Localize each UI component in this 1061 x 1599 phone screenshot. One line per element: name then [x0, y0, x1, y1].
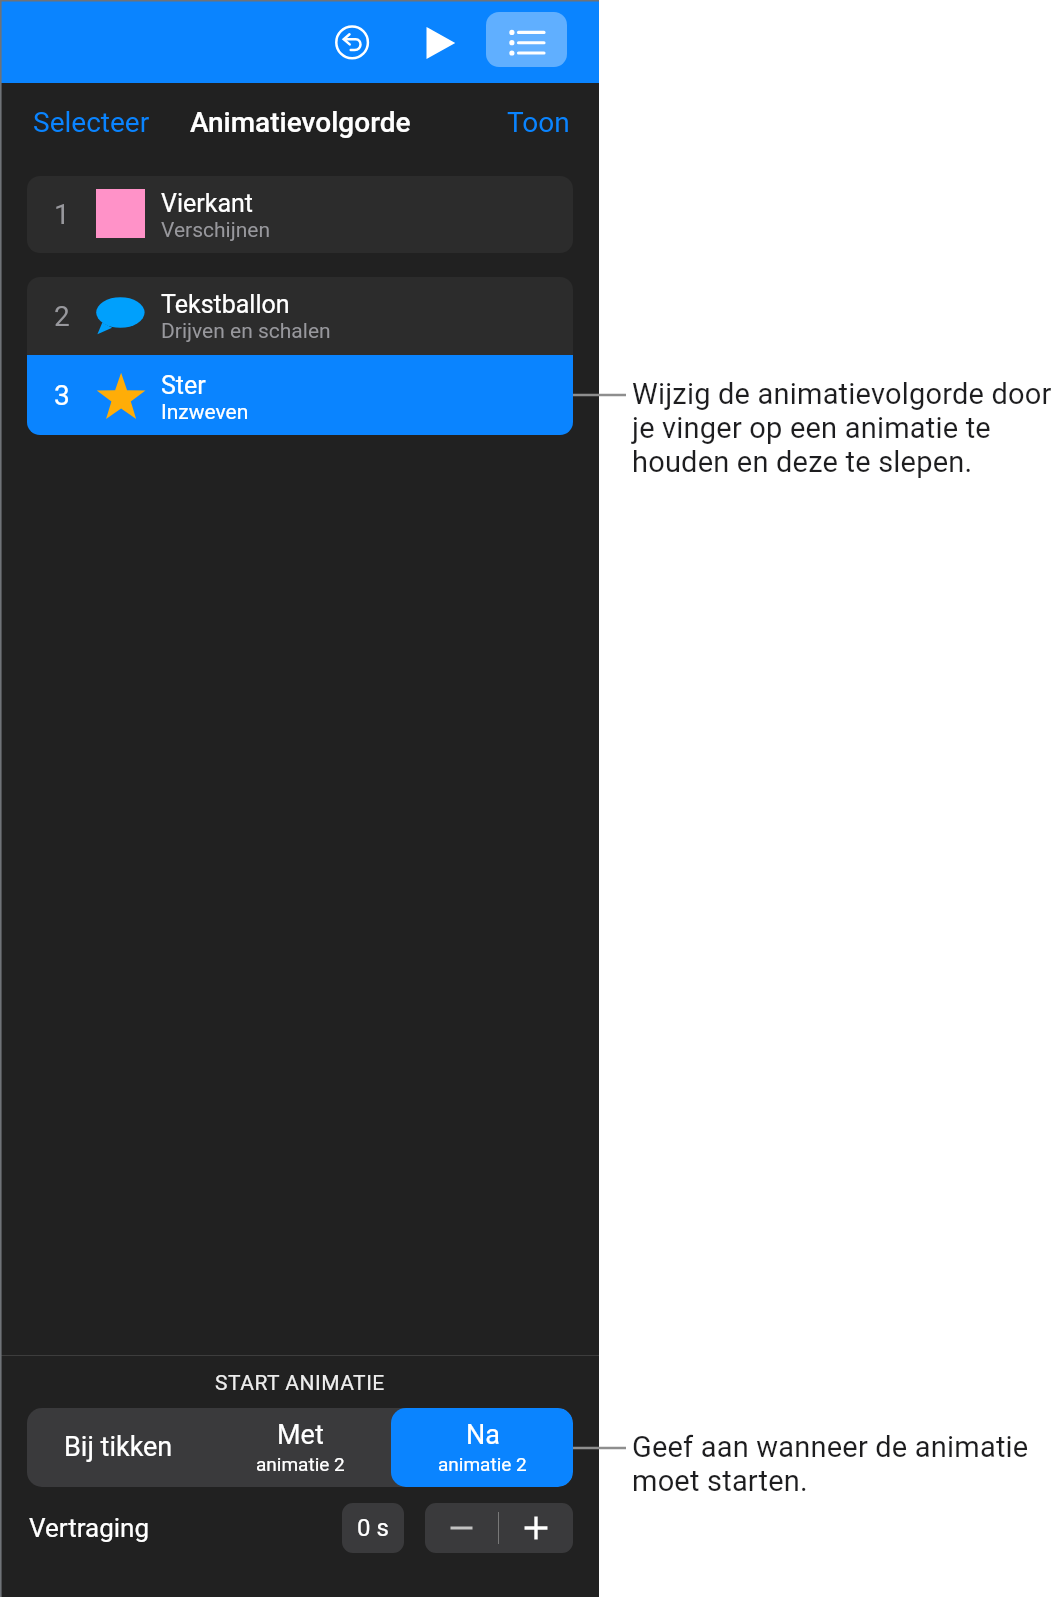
staticText: 0 s [357, 1514, 389, 1542]
button[interactable]: 3 [27, 355, 573, 435]
button[interactable]: Met [209, 1408, 391, 1487]
staticText: Met [277, 1419, 324, 1451]
button[interactable]: 2 [27, 277, 573, 355]
button[interactable]: Bij tikken [27, 1408, 209, 1487]
staticText: 3 [54, 379, 70, 412]
staticText: Toon [507, 106, 570, 139]
staticText: Geef aan wanneer de animatie [632, 1430, 1029, 1464]
staticText: Tekstballon [161, 290, 290, 319]
staticText: animatie 2 [438, 1453, 527, 1475]
staticText: 2 [54, 300, 70, 333]
button[interactable]: Toon [494, 96, 583, 149]
staticText: Vierkant [161, 189, 253, 218]
staticText: Verschijnen [161, 218, 271, 243]
button[interactable]: Decrease delay [425, 1503, 498, 1553]
staticText: Drijven en schalen [161, 319, 331, 344]
button[interactable]: Play [417, 19, 463, 65]
button[interactable]: Na [391, 1408, 573, 1487]
button[interactable]: Increase delay [499, 1503, 573, 1553]
button[interactable]: 0 s [342, 1503, 404, 1553]
staticText: Animatievolgorde [190, 106, 411, 139]
button[interactable]: 1 [27, 176, 573, 253]
staticText: houden en deze te slepen. [632, 445, 973, 479]
staticText: Bij tikken [64, 1431, 173, 1463]
button[interactable]: Animation order [486, 12, 567, 67]
staticText: je vinger op een animatie te [632, 411, 991, 445]
staticText: Ster [161, 371, 206, 400]
staticText: Selecteer [33, 106, 150, 139]
staticText: moet starten. [632, 1464, 808, 1498]
staticText: 1 [54, 198, 70, 231]
staticText: Na [466, 1419, 500, 1451]
staticText: animatie 2 [256, 1453, 345, 1475]
staticText: Vertraging [29, 1513, 150, 1543]
staticText: START ANIMATIE [215, 1371, 385, 1396]
staticText: Wijzig de animatievolgorde door [632, 377, 1052, 411]
button[interactable]: Undo [326, 16, 379, 69]
staticText: Inzweven [161, 400, 249, 425]
button[interactable]: Selecteer [20, 96, 163, 149]
